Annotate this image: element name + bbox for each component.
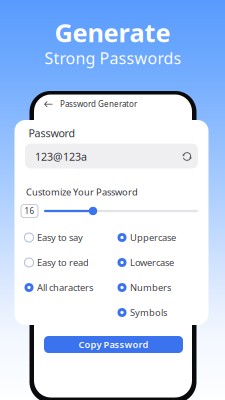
staticText: Password	[28, 126, 75, 140]
staticText: Strong Passwords	[44, 47, 181, 69]
button[interactable]: Symbols	[117, 303, 197, 321]
staticText: Easy to read	[37, 256, 89, 269]
staticText: Easy to say	[37, 231, 83, 244]
staticText: Copy Password	[78, 338, 148, 351]
button[interactable]: Regenerate password	[181, 150, 193, 162]
staticText: Uppercase	[130, 231, 176, 244]
staticText: Password Generator	[60, 99, 137, 109]
button[interactable]: Numbers	[117, 278, 197, 296]
button[interactable]: Copy Password	[44, 336, 183, 353]
staticText: Lowercase	[130, 256, 174, 269]
staticText: Generate	[54, 16, 170, 49]
staticText: All characters	[37, 281, 93, 294]
staticText: Numbers	[130, 281, 171, 294]
button[interactable]: Lowercase	[117, 253, 197, 271]
staticText: Symbols	[130, 306, 167, 319]
button[interactable]: All characters	[24, 278, 104, 296]
button[interactable]: Uppercase	[117, 228, 197, 246]
button[interactable]: Easy to say	[24, 228, 104, 246]
staticText: Customize Your Password	[26, 186, 138, 198]
staticText: 16	[24, 206, 34, 216]
button[interactable]: Easy to read	[24, 253, 104, 271]
staticText: 123@123a	[35, 149, 87, 164]
button[interactable]: Back	[41, 98, 55, 111]
